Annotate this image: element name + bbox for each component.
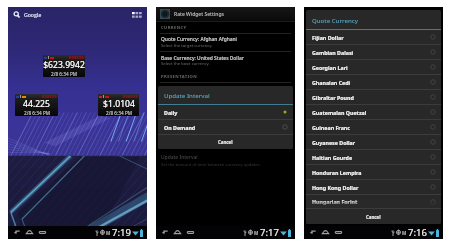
button[interactable]: Gibraltar Pound [306,90,441,104]
staticText: M [402,230,407,236]
staticText: $1.0104 [103,98,135,110]
staticText: CURRENCY [161,25,187,31]
staticText: Guyanese Dollar [312,139,356,146]
button[interactable]: 44.225 [15,94,58,116]
button[interactable]: Recents [187,229,194,236]
button[interactable]: Back [13,229,20,236]
staticText: Hong Kong Dollar [312,184,359,191]
staticText: Fijian Dollar [312,34,344,41]
staticText: M [254,230,259,236]
staticText: Guinean Franc [312,124,350,131]
button[interactable]: Guyanese Dollar [306,135,441,149]
staticText: Set the amount of time between currency … [161,162,261,168]
staticText: Ghanaian Cedi [312,79,351,86]
button[interactable]: Home [322,229,329,236]
staticText: Gibraltar Pound [312,94,354,101]
button[interactable]: On Demand [158,120,293,134]
button[interactable]: Home [174,229,181,236]
button[interactable]: Back [161,229,168,236]
button[interactable]: Georgian Lari [306,60,441,74]
staticText: Honduran Lempira [312,169,362,176]
staticText: Google [24,11,42,18]
staticText: Select the target currency. [161,43,213,49]
button[interactable]: Fijian Dollar [306,30,441,44]
staticText: Georgian Lari [312,64,348,71]
button[interactable]: Recents [39,229,46,236]
button[interactable]: Gambian Dalasi [306,45,441,59]
staticText: Hungarian Forint [312,198,358,205]
button[interactable]: Cancel [306,209,441,224]
staticText: Haitian Gourde [312,154,353,161]
staticText: Guatemalan Quetzal [312,109,367,116]
button[interactable]: Guinean Franc [306,120,441,134]
button[interactable]: Back [309,229,316,236]
staticText: Select the base currency. [161,61,210,67]
staticText: Gambian Dalasi [312,49,354,56]
staticText: 7:16 [408,226,427,239]
staticText: 2/8 6:34 PM [51,71,77,77]
staticText: Base Currency: United States Dollar [161,55,244,62]
button[interactable]: $1.0104 [98,94,139,116]
button[interactable]: Recents [335,229,342,236]
staticText: 2/8 6:34 PM [106,110,132,116]
button[interactable]: Hungarian Forint [306,195,441,208]
staticText: 2/8 6:34 PM [24,110,50,116]
staticText: Rate Widget Settings [174,11,224,18]
staticText: 7:17 [260,226,279,239]
button[interactable]: Guatemalan Quetzal [306,105,441,119]
staticText: Cancel [366,214,381,220]
button[interactable]: Cancel [158,135,293,149]
button[interactable]: Daily [158,105,293,119]
button[interactable]: Apps [132,12,142,18]
staticText: 44.225 [23,98,50,110]
button[interactable]: Haitian Gourde [306,150,441,164]
staticText: PRESENTATION [161,74,198,80]
button[interactable]: Rate Widget Settings [156,7,295,21]
button[interactable]: Honduran Lempira [306,165,441,179]
button[interactable]: Ghanaian Cedi [306,75,441,89]
other: Search [13,11,21,19]
staticText: Update Interval [164,91,210,99]
staticText: Quote Currency: Afghan Afghani [161,36,237,43]
button[interactable]: Hong Kong Dollar [306,180,441,194]
button[interactable]: Home [26,229,33,236]
staticText: Daily [164,109,178,116]
staticText: On Demand [164,124,196,131]
button[interactable]: $623.9942 [43,55,85,77]
staticText: Quote Currency [312,16,358,24]
staticText: $623.9942 [43,59,85,71]
staticText: Cancel [218,139,233,145]
button[interactable]: Search [10,8,42,21]
staticText: 7:19 [112,226,131,239]
staticText: Update Interval [161,154,198,161]
staticText: M [106,230,111,236]
